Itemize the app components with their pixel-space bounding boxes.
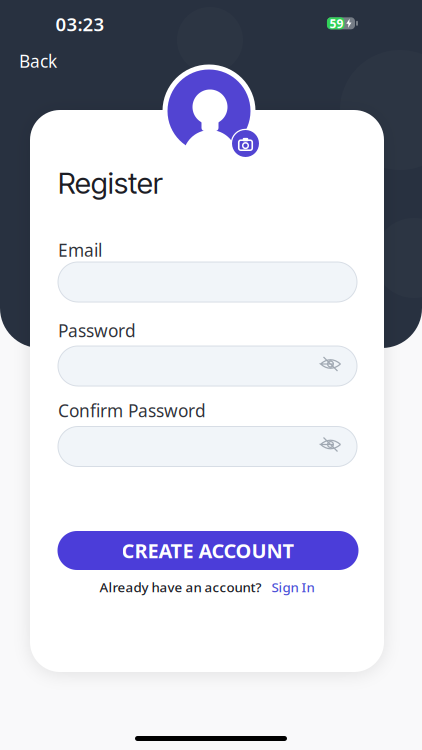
staticText: Already have an account?	[99, 578, 261, 596]
button[interactable]: Show password	[320, 437, 341, 452]
button[interactable]: CREATE ACCOUNT	[57, 531, 358, 570]
staticText: 03:23	[55, 12, 104, 36]
button[interactable]: Show password	[320, 356, 341, 371]
staticText: Sign In	[271, 578, 314, 596]
staticText: Confirm Password	[58, 399, 206, 422]
button[interactable]: Sign In	[271, 578, 314, 596]
button[interactable]: Change photo	[231, 129, 260, 158]
staticText: CREATE ACCOUNT	[121, 537, 294, 564]
staticText: Register	[58, 165, 163, 201]
staticText: Email	[58, 238, 102, 261]
staticText: Back	[19, 49, 57, 72]
staticText: Password	[58, 319, 136, 342]
staticText: 59	[329, 15, 343, 31]
button[interactable]: Back	[19, 49, 57, 72]
